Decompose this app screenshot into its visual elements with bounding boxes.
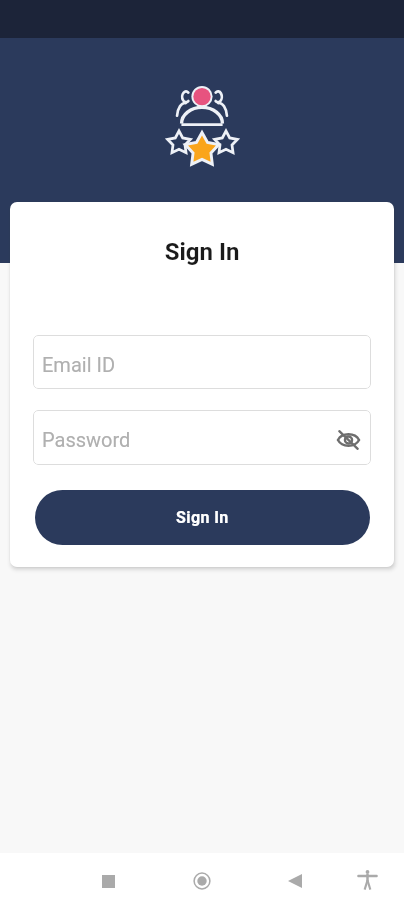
- button[interactable]: Show password: [329, 419, 367, 457]
- button[interactable]: Accessibility: [347, 860, 388, 900]
- staticText: Sign In: [176, 508, 229, 527]
- button[interactable]: Home: [181, 862, 222, 900]
- staticText: Email ID: [42, 353, 116, 376]
- staticText: Password: [42, 428, 131, 451]
- button[interactable]: Password: [33, 410, 371, 465]
- button[interactable]: Email ID: [33, 335, 371, 389]
- button[interactable]: Sign In: [35, 490, 370, 545]
- staticText: Sign In: [10, 238, 394, 266]
- button[interactable]: Back: [274, 862, 315, 900]
- button[interactable]: Recent apps: [88, 862, 129, 900]
